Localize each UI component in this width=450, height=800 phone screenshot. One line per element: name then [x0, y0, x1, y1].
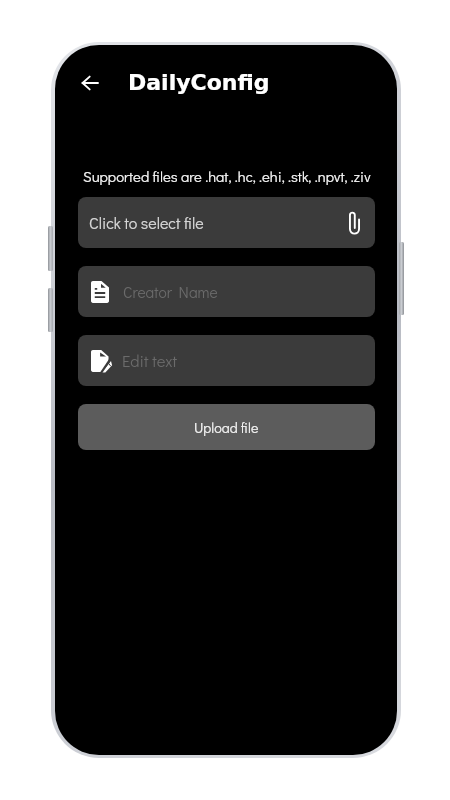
button[interactable]: Creator Name: [78, 266, 375, 317]
button[interactable]: Click to select file: [78, 197, 375, 248]
staticText: Supported files are .hat, .hc, .ehi, .st…: [83, 167, 371, 186]
staticText: Creator Name: [123, 282, 218, 302]
staticText: Upload file: [194, 418, 259, 437]
button[interactable]: Upload file: [78, 404, 375, 450]
button[interactable]: Edit text: [78, 335, 375, 386]
staticText: DailyConfig: [128, 70, 270, 96]
staticText: Edit text: [122, 350, 178, 372]
button[interactable]: Back: [68, 61, 112, 105]
staticText: Click to select file: [89, 212, 204, 233]
